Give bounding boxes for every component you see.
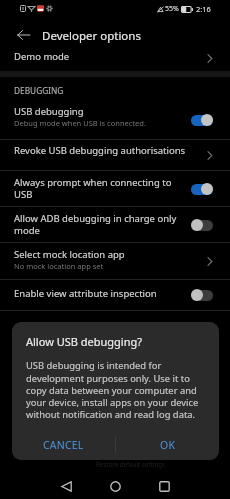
button[interactable]: Demo mode	[0, 45, 230, 71]
button[interactable]: Allow ADB debugging in charge only mode	[0, 207, 230, 242]
staticText: Debug mode when USB is connected.	[14, 118, 146, 128]
staticText: Demo mode	[14, 50, 70, 63]
staticText: 55%	[165, 4, 179, 14]
staticText: DEBUGGING	[14, 85, 64, 96]
button[interactable]: Select mock location app	[0, 243, 230, 279]
button[interactable]: USB debugging	[0, 100, 230, 139]
staticText: CANCEL	[43, 438, 84, 452]
button[interactable]: Back	[52, 472, 81, 499]
button[interactable]: Always prompt when connecting to USB	[0, 171, 230, 206]
button[interactable]: Enable view attribute inspection	[0, 280, 230, 310]
staticText: Allow ADB debugging in charge only mode	[14, 212, 182, 237]
staticText: No mock location app set	[14, 261, 104, 271]
staticText: OK	[160, 438, 176, 452]
staticText: Revoke USB debugging authorisations	[14, 144, 186, 157]
staticText: Allow USB debugging?	[26, 334, 142, 349]
staticText: Enable view attribute inspection	[14, 287, 157, 300]
staticText: USB debugging	[14, 105, 84, 118]
button[interactable]: Back	[9, 21, 37, 49]
staticText: Select mock location app	[14, 248, 125, 261]
button[interactable]: Revoke USB debugging authorisations	[0, 140, 230, 170]
button[interactable]: CANCEL	[12, 430, 115, 460]
button[interactable]: OK	[116, 430, 219, 460]
staticText: Restore default settings	[96, 460, 166, 468]
staticText: USB debugging is intended for developmen…	[26, 359, 202, 420]
staticText: Developer options	[42, 28, 141, 44]
staticText: 2:16	[196, 4, 211, 14]
button[interactable]: Recent apps	[150, 472, 179, 499]
button[interactable]: Home	[101, 472, 130, 499]
staticText: Always prompt when connecting to USB	[14, 176, 179, 201]
